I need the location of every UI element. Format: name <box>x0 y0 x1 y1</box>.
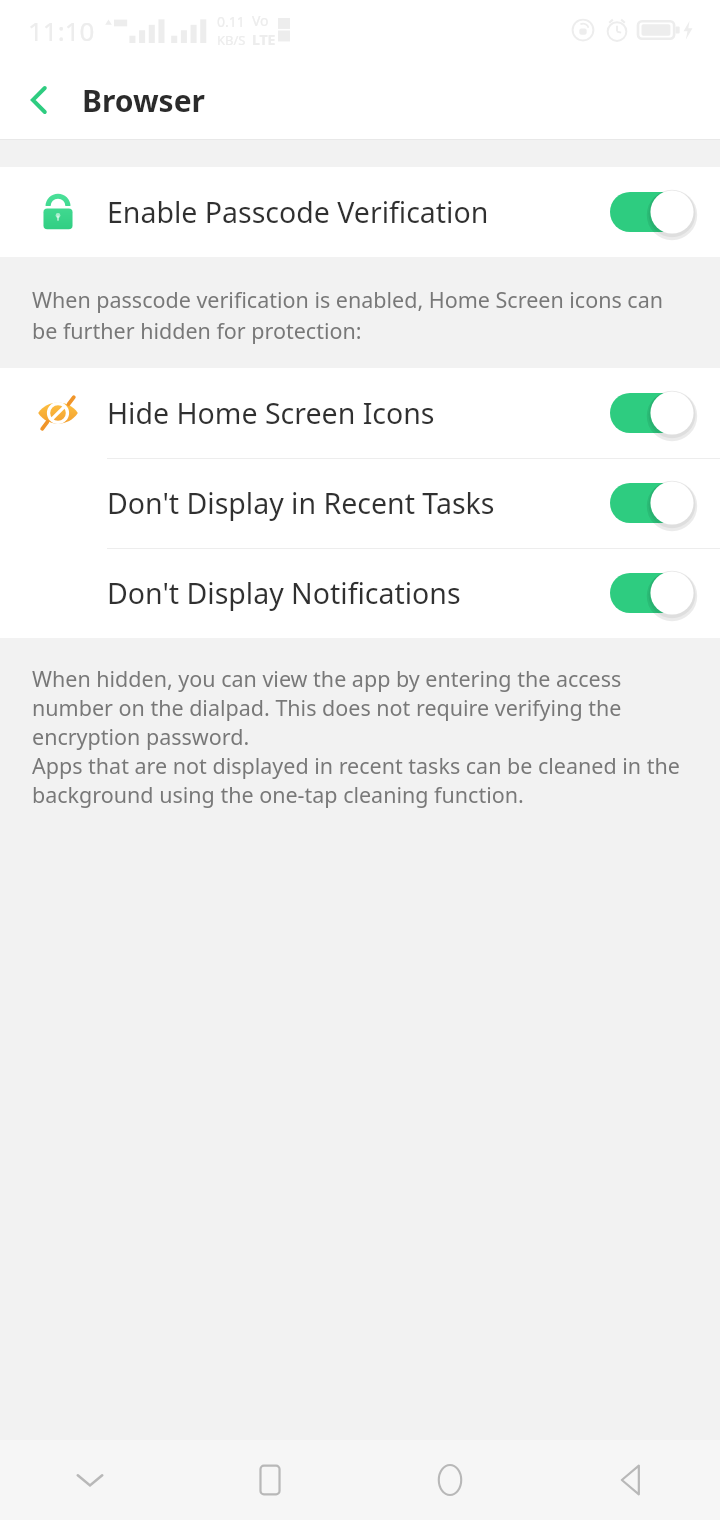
staticText: 0.11 <box>217 12 245 31</box>
button[interactable] <box>604 385 700 441</box>
button[interactable] <box>604 565 700 621</box>
button[interactable]: Back <box>540 1440 720 1520</box>
staticText: When hidden, you can view the app by ent… <box>32 664 694 751</box>
button[interactable]: Hide Home Screen Icons <box>0 368 720 458</box>
staticText: Hide Home Screen Icons <box>107 394 435 433</box>
staticText: Vo <box>252 11 269 30</box>
staticText: KB/S <box>217 31 246 49</box>
button[interactable]: Home <box>360 1440 540 1520</box>
button[interactable] <box>604 184 700 240</box>
button[interactable]: Don't Display Notifications <box>0 548 720 638</box>
button[interactable] <box>604 475 700 531</box>
button[interactable]: Recent apps <box>180 1440 360 1520</box>
button[interactable]: Don't Display in Recent Tasks <box>0 458 720 548</box>
button[interactable]: Enable Passcode Verification <box>0 167 720 257</box>
staticText: 11:10 <box>28 13 95 48</box>
staticText: Browser <box>82 80 205 121</box>
staticText: Apps that are not displayed in recent ta… <box>32 751 694 809</box>
staticText: Don't Display in Recent Tasks <box>107 484 495 523</box>
staticText: Enable Passcode Verification <box>107 193 489 232</box>
button[interactable]: Hide keyboard <box>0 1440 180 1520</box>
staticText: Don't Display Notifications <box>107 574 461 613</box>
button[interactable]: Back <box>10 70 70 130</box>
staticText: When passcode verification is enabled, H… <box>32 285 680 346</box>
staticText: LTE <box>252 30 276 49</box>
